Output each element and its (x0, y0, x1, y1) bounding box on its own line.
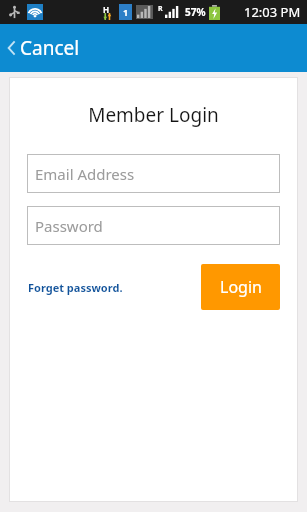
staticText: 1 (123, 6, 129, 18)
staticText: Member Login (10, 102, 297, 128)
staticText: Forget password. (28, 280, 123, 295)
button[interactable]: Email Address (28, 155, 279, 192)
staticText: 57% (185, 5, 206, 19)
staticText: 12:03 PM (244, 3, 301, 21)
button[interactable]: Forget password. (27, 272, 124, 303)
button[interactable]: Login (201, 264, 280, 310)
staticText: Email Address (35, 164, 135, 184)
staticText: Login (220, 276, 262, 298)
staticText: Password (35, 216, 103, 236)
staticText: H (103, 4, 110, 15)
button[interactable]: Cancel (0, 24, 307, 72)
staticText: Cancel (20, 35, 80, 61)
staticText: R (158, 4, 163, 14)
button[interactable]: Password (28, 207, 279, 244)
